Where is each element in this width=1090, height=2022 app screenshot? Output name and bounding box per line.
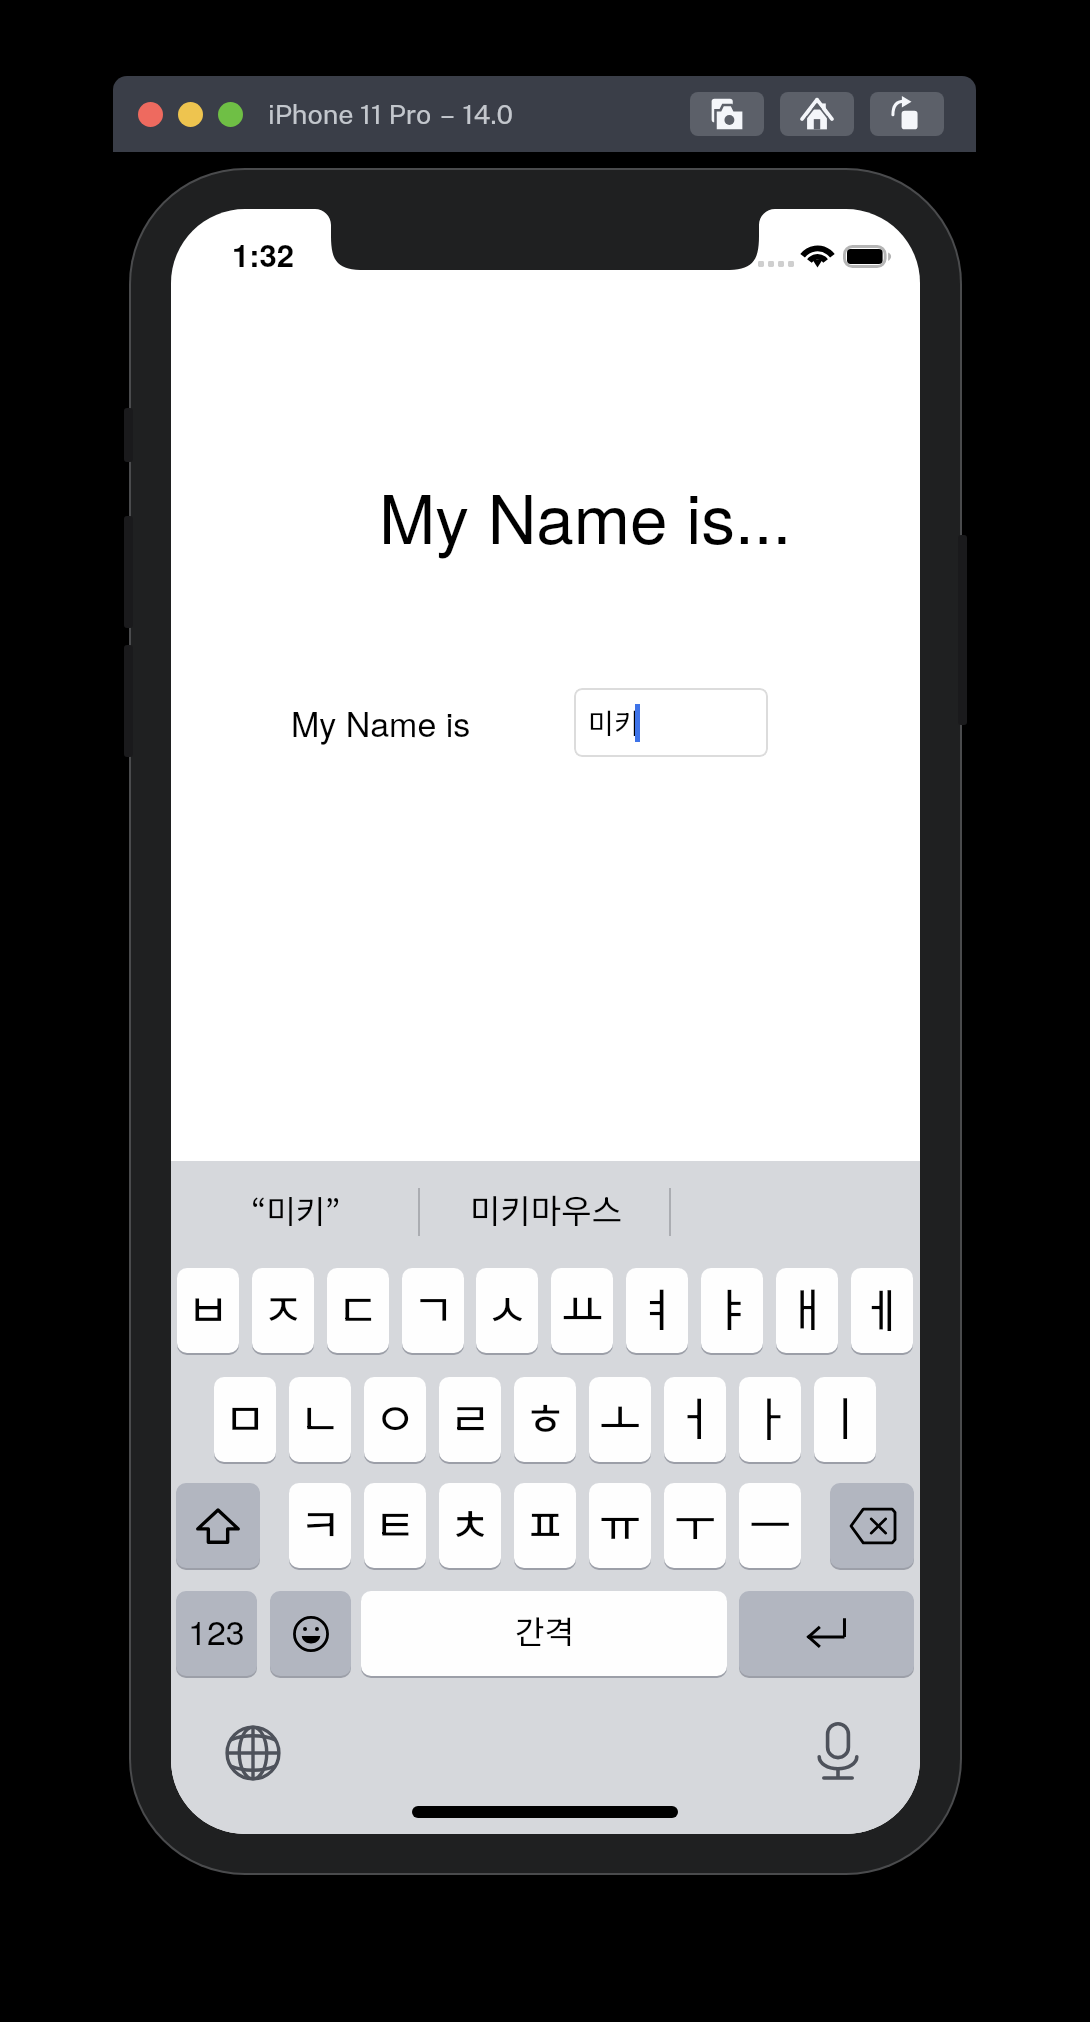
button[interactable]: ㅡ xyxy=(739,1483,801,1568)
button[interactable]: Minimize xyxy=(178,102,203,127)
staticText: ㅍ xyxy=(524,1489,567,1556)
staticText: ㅗ xyxy=(599,1383,642,1450)
staticText: ㄹ xyxy=(449,1383,492,1450)
button[interactable]: ㅎ xyxy=(514,1377,576,1462)
button[interactable]: Backspace xyxy=(830,1483,914,1568)
staticText: ㅜ xyxy=(674,1489,717,1556)
button[interactable]: ㅍ xyxy=(514,1483,576,1568)
staticText: ㅈ xyxy=(262,1274,305,1341)
button[interactable]: ㄷ xyxy=(327,1268,389,1353)
button[interactable]: ㅛ xyxy=(551,1268,613,1353)
button[interactable]: Screenshot xyxy=(690,92,764,136)
staticText: ㅏ xyxy=(749,1383,792,1450)
button[interactable]: 123 xyxy=(176,1591,257,1676)
button[interactable]: ㅗ xyxy=(589,1377,651,1462)
staticText: iPhone 11 Pro – 14.0 xyxy=(268,98,514,130)
button[interactable]: ㅏ xyxy=(739,1377,801,1462)
button[interactable]: ㅔ xyxy=(851,1268,913,1353)
staticText: ㅌ xyxy=(374,1489,417,1556)
button[interactable]: Close xyxy=(138,102,163,127)
staticText: ㅅ xyxy=(486,1274,529,1341)
button[interactable]: Dictation xyxy=(818,1722,858,1780)
button[interactable]: Return xyxy=(739,1591,914,1676)
button[interactable]: ㅠ xyxy=(589,1483,651,1568)
staticText: ㅐ xyxy=(786,1274,829,1341)
button[interactable]: ㅐ xyxy=(776,1268,838,1353)
staticText: ㅋ xyxy=(299,1489,342,1556)
staticText: ㅛ xyxy=(561,1274,604,1341)
button[interactable]: Shift xyxy=(176,1483,260,1568)
staticText: My Name is... xyxy=(379,467,792,564)
staticText: ㄱ xyxy=(412,1274,455,1341)
staticText: ㄷ xyxy=(337,1274,380,1341)
button[interactable]: Rotate xyxy=(870,92,944,136)
button[interactable]: ㅈ xyxy=(252,1268,314,1353)
button[interactable]: 미키 xyxy=(574,688,768,757)
button[interactable]: ㄱ xyxy=(402,1268,464,1353)
staticText: ㅂ xyxy=(187,1274,230,1341)
button[interactable]: Emoji xyxy=(270,1591,351,1676)
button[interactable]: Maximize xyxy=(218,102,243,127)
staticText: ㅓ xyxy=(674,1383,717,1450)
button[interactable]: ㅜ xyxy=(664,1483,726,1568)
button[interactable]: Next keyboard xyxy=(226,1726,280,1780)
staticText: ㅇ xyxy=(374,1383,417,1450)
staticText: “미키” xyxy=(251,1186,341,1232)
button[interactable]: ㅓ xyxy=(664,1377,726,1462)
staticText: ㅎ xyxy=(524,1383,567,1450)
button[interactable]: ㅋ xyxy=(289,1483,351,1568)
staticText: ㅔ xyxy=(861,1274,904,1341)
staticText: ㅠ xyxy=(599,1489,642,1556)
button[interactable]: Home xyxy=(780,92,854,136)
staticText: 미키 xyxy=(588,702,640,743)
staticText: 1:32 xyxy=(232,232,295,276)
button[interactable]: ㅂ xyxy=(177,1268,239,1353)
staticText: ㄴ xyxy=(299,1383,342,1450)
button[interactable]: ㅇ xyxy=(364,1377,426,1462)
button[interactable]: ㅌ xyxy=(364,1483,426,1568)
button[interactable]: ㅊ xyxy=(439,1483,501,1568)
staticText: ㅡ xyxy=(749,1489,792,1556)
button[interactable]: 간격 xyxy=(361,1591,727,1676)
button[interactable]: ㄴ xyxy=(289,1377,351,1462)
button[interactable]: ㅕ xyxy=(626,1268,688,1353)
staticText: ㅁ xyxy=(224,1383,267,1450)
staticText: 미키마우스 xyxy=(470,1185,622,1233)
staticText: My Name is xyxy=(291,698,471,747)
staticText: 간격 xyxy=(515,1607,574,1653)
staticText: ㅣ xyxy=(824,1383,867,1450)
staticText: ㅊ xyxy=(449,1489,492,1556)
button[interactable]: ㅑ xyxy=(701,1268,763,1353)
staticText: 123 xyxy=(188,1606,245,1655)
staticText: ㅕ xyxy=(636,1274,679,1341)
button[interactable]: ㅅ xyxy=(476,1268,538,1353)
button[interactable]: ㅣ xyxy=(814,1377,876,1462)
button[interactable]: ㄹ xyxy=(439,1377,501,1462)
button[interactable]: ㅁ xyxy=(214,1377,276,1462)
staticText: ㅑ xyxy=(711,1274,754,1341)
